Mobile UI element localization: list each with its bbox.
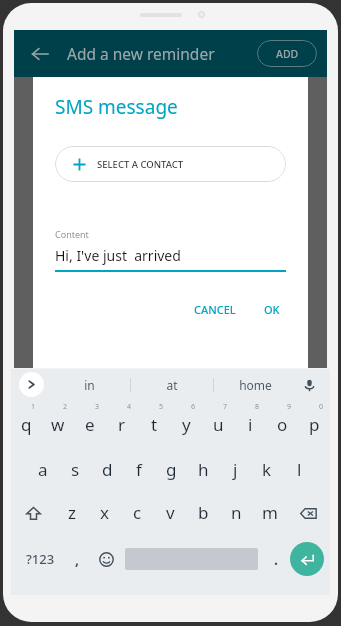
staticText: 8 — [255, 402, 260, 412]
button[interactable]: n — [220, 490, 253, 535]
staticText: home — [239, 377, 272, 393]
button[interactable]: s — [59, 445, 91, 490]
staticText: a — [38, 458, 48, 481]
button[interactable]: 5 — [138, 400, 170, 445]
button[interactable]: j — [219, 445, 251, 490]
staticText: w — [51, 413, 65, 436]
staticText: x — [100, 501, 109, 524]
staticText: g — [166, 458, 177, 481]
staticText: ADD — [276, 47, 299, 61]
button[interactable]: in — [49, 369, 130, 400]
button[interactable]: k — [251, 445, 283, 490]
staticText: Content — [55, 228, 89, 240]
staticText: ?123 — [26, 550, 55, 568]
button[interactable]: 2 — [42, 400, 74, 445]
button[interactable]: Voice input — [296, 372, 322, 398]
button[interactable]: d — [91, 445, 123, 490]
button[interactable]: f — [123, 445, 155, 490]
staticText: o — [277, 413, 288, 436]
staticText: j — [233, 458, 238, 481]
staticText: CANCEL — [194, 302, 236, 317]
staticText: v — [166, 501, 175, 524]
staticText: m — [262, 501, 278, 524]
staticText: p — [309, 413, 320, 436]
button[interactable]: 6 — [170, 400, 202, 445]
button[interactable]: Shift — [17, 497, 49, 529]
button[interactable]: Backspace — [292, 497, 324, 529]
button[interactable]: Back — [22, 36, 58, 72]
staticText: u — [213, 413, 224, 436]
staticText: 5 — [159, 402, 164, 412]
staticText: q — [21, 413, 32, 436]
button[interactable]: ADD — [257, 40, 317, 67]
button[interactable]: 8 — [234, 400, 266, 445]
button[interactable]: home — [214, 369, 296, 400]
staticText: y — [182, 413, 191, 436]
button[interactable]: c — [121, 490, 154, 535]
button[interactable]: ?123 — [17, 535, 63, 583]
button[interactable]: 1 — [11, 400, 42, 445]
button[interactable]: 3 — [74, 400, 106, 445]
staticText: s — [71, 458, 80, 481]
button[interactable]: a — [26, 445, 59, 490]
button[interactable]: x — [88, 490, 121, 535]
button[interactable]: . — [262, 535, 290, 583]
button[interactable]: Expand toolbar — [19, 372, 44, 397]
staticText: Hi, I've just arrived — [55, 246, 181, 265]
staticText: d — [102, 458, 113, 481]
staticText: i — [248, 413, 253, 436]
staticText: 3 — [95, 402, 100, 412]
button[interactable]: v — [154, 490, 187, 535]
staticText: l — [297, 458, 302, 481]
staticText: OK — [264, 302, 280, 317]
staticText: e — [85, 413, 95, 436]
button[interactable]: CANCEL — [188, 298, 242, 321]
staticText: f — [136, 458, 142, 481]
staticText: SMS message — [55, 94, 178, 120]
staticText: n — [231, 501, 242, 524]
staticText: r — [118, 413, 126, 436]
button[interactable]: SELECT A CONTACT — [55, 146, 286, 182]
button[interactable]: , — [63, 535, 91, 583]
staticText: z — [68, 501, 76, 524]
staticText: b — [198, 501, 209, 524]
button[interactable]: 4 — [106, 400, 138, 445]
staticText: 6 — [191, 402, 196, 412]
button[interactable]: m — [253, 490, 286, 535]
button[interactable]: at — [131, 369, 213, 400]
staticText: h — [198, 458, 209, 481]
staticText: k — [262, 458, 272, 481]
button[interactable]: h — [187, 445, 219, 490]
staticText: 4 — [127, 402, 132, 412]
button[interactable]: l — [283, 445, 315, 490]
staticText: Add a new reminder — [67, 43, 215, 64]
staticText: c — [133, 501, 142, 524]
staticText: , — [75, 550, 79, 569]
staticText: . — [274, 550, 278, 569]
button[interactable]: g — [155, 445, 187, 490]
staticText: 2 — [63, 402, 68, 412]
button[interactable]: b — [187, 490, 220, 535]
staticText: 0 — [319, 402, 324, 412]
button[interactable]: 7 — [202, 400, 234, 445]
staticText: 1 — [31, 402, 36, 412]
staticText: SELECT A CONTACT — [97, 158, 184, 171]
staticText: in — [84, 377, 95, 393]
button[interactable]: 9 — [266, 400, 298, 445]
staticText: 7 — [223, 402, 228, 412]
button[interactable]: 0 — [298, 400, 330, 445]
button[interactable]: Enter — [290, 542, 324, 576]
staticText: at — [166, 377, 178, 393]
button[interactable]: OK — [258, 298, 286, 321]
button[interactable]: z — [55, 490, 88, 535]
staticText: 9 — [287, 402, 292, 412]
button[interactable]: Emoji — [91, 535, 121, 583]
staticText: t — [151, 413, 158, 436]
